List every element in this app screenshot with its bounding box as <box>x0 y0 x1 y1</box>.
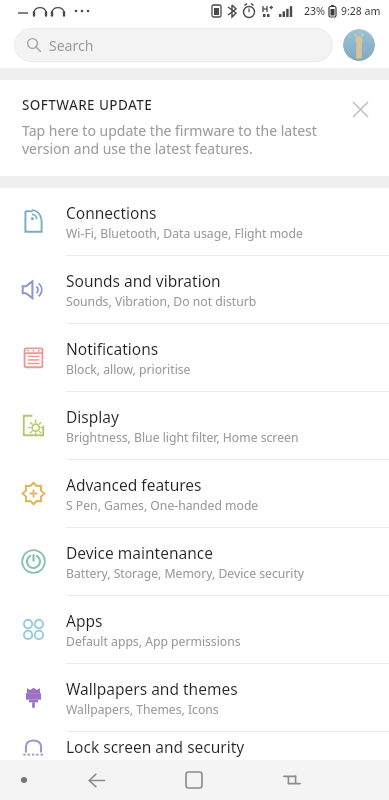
staticText: Wallpapers and themes <box>66 678 238 699</box>
button[interactable]: Home <box>145 760 243 800</box>
staticText: Notifications <box>66 338 159 359</box>
staticText: Advanced features <box>66 474 202 495</box>
button[interactable]: Connections <box>0 188 389 256</box>
staticText: Connections <box>66 202 157 223</box>
staticText: Block, allow, prioritise <box>66 361 191 378</box>
button[interactable]: Advanced features <box>0 460 389 528</box>
staticText: 9:28 am <box>341 4 381 18</box>
button[interactable]: Sounds and vibration <box>0 256 389 324</box>
staticText: Apps <box>66 610 103 631</box>
button[interactable]: Notifications <box>0 324 389 392</box>
button[interactable]: Device maintenance <box>0 528 389 596</box>
staticText: Sounds, Vibration, Do not disturb <box>66 293 257 310</box>
staticText: Sounds and vibration <box>66 270 221 291</box>
staticText: Default apps, App permissions <box>66 633 241 650</box>
staticText: Search <box>49 36 94 55</box>
button[interactable]: Profile <box>343 29 375 61</box>
staticText: Wi-Fi, Bluetooth, Data usage, Flight mod… <box>66 225 303 242</box>
button[interactable]: Dismiss <box>347 96 373 122</box>
staticText: SOFTWARE UPDATE <box>22 96 153 114</box>
staticText: Tap here to update the firmware to the l… <box>22 121 347 158</box>
staticText: Brightness, Blue light filter, Home scre… <box>66 429 299 446</box>
button[interactable]: Lock screen and security <box>0 732 389 760</box>
staticText: S Pen, Games, One-handed mode <box>66 497 259 514</box>
button[interactable]: Apps <box>0 596 389 664</box>
button[interactable]: Back <box>48 760 145 800</box>
button[interactable]: Display <box>0 392 389 460</box>
staticText: Display <box>66 406 119 427</box>
staticText: Lock screen and security <box>66 736 245 757</box>
button[interactable]: Search <box>14 28 333 62</box>
button[interactable]: SOFTWARE UPDATE <box>0 80 389 176</box>
staticText: Wallpapers, Themes, Icons <box>66 701 219 718</box>
button[interactable]: Recents <box>243 760 341 800</box>
button[interactable]: Wallpapers and themes <box>0 664 389 732</box>
staticText: Battery, Storage, Memory, Device securit… <box>66 565 305 582</box>
staticText: Device maintenance <box>66 542 213 563</box>
staticText: 23% <box>304 4 325 18</box>
